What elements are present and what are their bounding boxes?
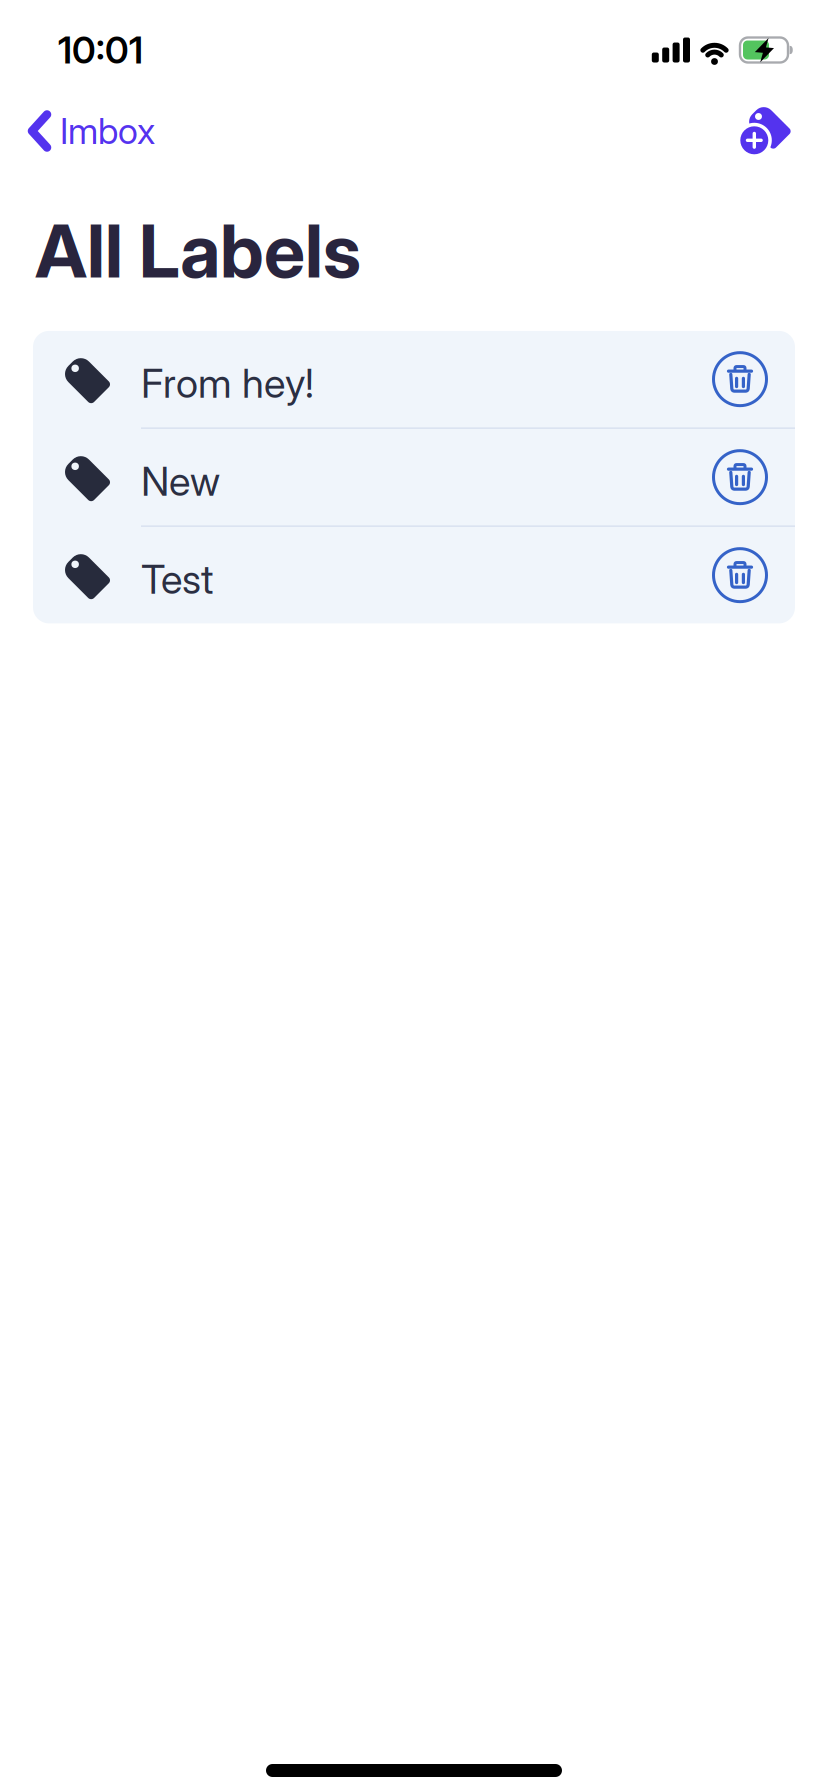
staticText: All Labels (35, 209, 361, 293)
staticText: New (141, 458, 220, 504)
staticText: Test (141, 556, 213, 602)
button[interactable]: Delete New (712, 449, 795, 505)
button[interactable]: Add label (737, 104, 828, 158)
button[interactable]: From hey! (33, 331, 795, 427)
staticText: 10:01 (58, 29, 143, 71)
staticText: Imbox (60, 110, 155, 152)
button[interactable]: Test (33, 527, 795, 623)
staticText: From hey! (141, 360, 314, 406)
button[interactable]: Back to Imbox (0, 109, 155, 152)
button[interactable]: Delete Test (712, 547, 795, 603)
button[interactable]: Delete From hey! (712, 351, 795, 407)
button[interactable]: New (33, 429, 795, 525)
